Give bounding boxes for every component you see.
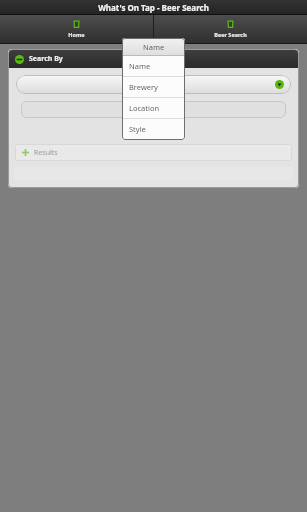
staticText: Location (129, 103, 160, 113)
staticText: Name (143, 42, 165, 52)
button[interactable]: Home (0, 15, 153, 43)
button[interactable]: Open selector (16, 75, 291, 94)
button[interactable]: Location (123, 98, 184, 118)
button[interactable]: Name (123, 56, 184, 76)
staticText: Name (129, 61, 151, 71)
button[interactable]: Brewery (123, 77, 184, 97)
button[interactable]: Beer Search (154, 15, 307, 43)
staticText: Brewery (129, 82, 158, 92)
button[interactable]: Search By (9, 50, 298, 68)
staticText: Beer Search (214, 31, 247, 38)
other: Open selector (275, 80, 284, 89)
button[interactable]: Style (123, 119, 184, 139)
staticText: Results (34, 148, 58, 158)
button[interactable] (21, 101, 286, 118)
staticText: What's On Tap - Beer Search (98, 2, 209, 13)
staticText: Style (129, 124, 146, 134)
staticText: Search Beers (131, 127, 177, 137)
button[interactable]: Results (15, 144, 292, 161)
staticText: Search By (29, 54, 63, 64)
button[interactable]: Name (123, 39, 184, 55)
button[interactable]: Search Beers (122, 124, 186, 139)
staticText: Home (68, 31, 85, 38)
